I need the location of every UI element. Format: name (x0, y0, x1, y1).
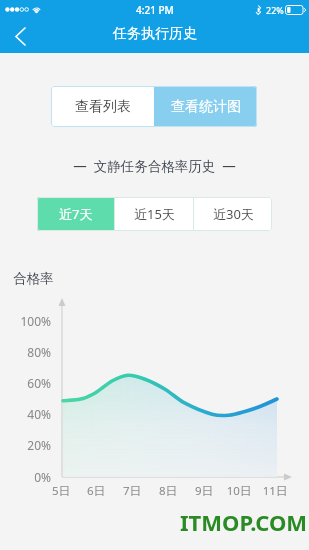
button[interactable]: 近15天 (115, 197, 193, 231)
staticText: 100% (10, 313, 51, 329)
button[interactable]: Back (0, 20, 40, 53)
staticText: 60% (10, 375, 51, 391)
staticText: 近15天 (134, 205, 175, 223)
staticText: 任务执行历史 (113, 25, 197, 43)
staticText: — 文静任务合格率历史 — (0, 157, 309, 175)
staticText: 7日 (116, 483, 148, 499)
staticText: 20% (10, 437, 51, 453)
button[interactable]: 近7天 (37, 197, 114, 231)
staticText: 40% (10, 406, 51, 422)
staticText: 9日 (188, 483, 220, 499)
staticText: 查看列表 (75, 98, 131, 116)
button[interactable]: 查看统计图 (154, 86, 257, 127)
staticText: 合格率 (13, 270, 54, 287)
staticText: 4:21 PM (136, 3, 174, 17)
button[interactable]: 近30天 (194, 197, 272, 231)
staticText: 近30天 (213, 205, 254, 223)
staticText: 近7天 (59, 205, 93, 223)
staticText: 0% (10, 469, 51, 485)
staticText: 11日 (259, 483, 291, 499)
staticText: 5日 (45, 483, 77, 499)
staticText: 查看统计图 (171, 98, 241, 116)
button[interactable]: 查看列表 (51, 86, 154, 127)
staticText: 6日 (80, 483, 112, 499)
staticText: 22% (266, 4, 284, 16)
staticText: 80% (10, 344, 51, 360)
staticText: 8日 (152, 483, 184, 499)
staticText: 10日 (223, 483, 255, 499)
staticText: ITMOP.COM (180, 507, 308, 537)
